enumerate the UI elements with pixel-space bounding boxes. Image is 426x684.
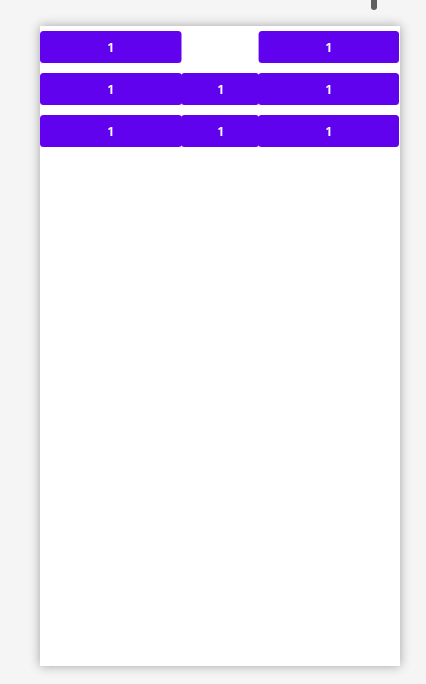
staticText: 1 xyxy=(107,80,115,98)
staticText: 1 xyxy=(325,80,333,98)
other: Scroll position xyxy=(371,0,377,10)
button[interactable]: 1 xyxy=(259,73,399,105)
staticText: 1 xyxy=(325,122,333,140)
button[interactable]: 1 xyxy=(182,73,259,105)
button[interactable]: 1 xyxy=(259,115,399,147)
staticText: 1 xyxy=(107,122,115,140)
staticText: 1 xyxy=(325,38,333,56)
button[interactable]: 1 xyxy=(182,115,259,147)
button[interactable]: 1 xyxy=(40,73,182,105)
button[interactable]: 1 xyxy=(259,31,399,63)
button[interactable]: 1 xyxy=(40,115,182,147)
staticText: 1 xyxy=(107,38,115,56)
staticText: 1 xyxy=(217,80,225,98)
button[interactable]: 1 xyxy=(40,31,182,63)
staticText: 1 xyxy=(217,122,225,140)
